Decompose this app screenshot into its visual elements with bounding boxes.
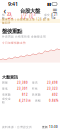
staticText: 盤後重點 xyxy=(2,28,22,35)
staticText: 最低 xyxy=(2,87,8,90)
staticText: 振幅 xyxy=(35,99,41,102)
staticText: ▮▮ xyxy=(47,2,51,6)
staticText: 最高 xyxy=(32,81,38,84)
staticText: 成交量 xyxy=(44,13,50,20)
staticText: 9:41 xyxy=(8,0,18,8)
staticText: 4,213億 xyxy=(51,13,58,20)
staticText: 外資買超 台積電領漲 金融股走弱 xyxy=(2,35,46,38)
staticText: 812 xyxy=(22,93,28,96)
staticText: 今日加權指數走勢 xyxy=(2,41,26,45)
staticText: 23,301 xyxy=(17,87,28,90)
staticText: ‹ xyxy=(3,6,6,16)
staticText: 402 xyxy=(52,93,58,96)
staticText: 23,380 xyxy=(17,81,28,84)
staticText: 23,498 xyxy=(47,81,58,84)
staticText: 0.84% xyxy=(49,99,58,102)
staticText: 4,213億 xyxy=(19,99,31,102)
staticText: 23,323 xyxy=(47,87,58,90)
staticText: 盤後公告｜台股收盤上漲 128 點 量能回升 xyxy=(2,18,50,24)
staticText: 23,451 xyxy=(7,11,13,22)
staticText: 大盤資訊 xyxy=(2,75,18,79)
staticText: +128.4 xyxy=(21,13,27,20)
staticText: 台股大盤 xyxy=(20,8,40,14)
staticText: 漲家數 xyxy=(2,93,11,96)
staticText: 更新 13:30 xyxy=(42,125,58,129)
staticText: 指數 xyxy=(2,13,5,20)
staticText: 開盤 xyxy=(2,81,8,84)
button[interactable]: Back xyxy=(2,8,8,14)
staticText: ☰ xyxy=(52,8,57,14)
staticText: 成交金額 xyxy=(2,97,11,104)
button[interactable]: Menu xyxy=(52,8,58,14)
staticText: 昨收 xyxy=(32,87,38,90)
staticText: +0.55% xyxy=(29,13,36,20)
staticText: 資料來源：台灣證交所 xyxy=(2,125,32,129)
staticText: 跌家數 xyxy=(32,93,41,96)
